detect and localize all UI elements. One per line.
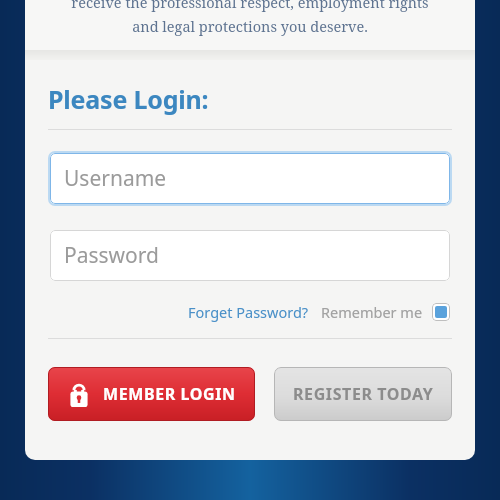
staticText: Forget Password?: [188, 302, 309, 322]
staticText: receive the professional respect, employ…: [71, 0, 429, 12]
staticText: REGISTER TODAY: [293, 383, 434, 405]
button[interactable]: Remember me: [321, 298, 450, 326]
staticText: MEMBER LOGIN: [103, 383, 236, 405]
staticText: Remember me: [321, 302, 423, 322]
staticText: Username: [64, 164, 167, 193]
staticText: and legal protections you deserve.: [132, 16, 368, 36]
staticText: Please Login:: [48, 82, 209, 116]
button[interactable]: Username: [50, 153, 450, 204]
button[interactable]: REGISTER TODAY: [274, 367, 452, 421]
staticText: Password: [64, 241, 159, 270]
button[interactable]: Password: [50, 230, 450, 281]
button[interactable]: MEMBER LOGIN: [48, 367, 255, 421]
button[interactable]: Forget Password?: [184, 298, 313, 326]
